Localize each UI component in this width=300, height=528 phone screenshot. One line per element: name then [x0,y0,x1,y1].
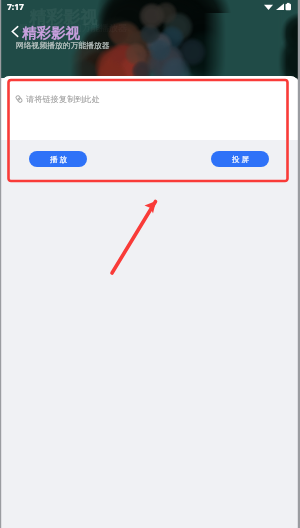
button[interactable]: 投 屏 [211,151,269,167]
button[interactable]: 播 放 [29,151,87,167]
staticText: 精彩影视 [22,24,80,42]
staticText: 投 屏 [232,154,249,164]
staticText: 网络视频播放的万能播放器 [16,40,110,50]
staticText: 精彩影视 [29,7,97,28]
staticText: 播 放 [50,154,67,164]
button[interactable]: Back [7,23,23,40]
staticText: 7:17 [7,1,24,13]
staticText: 网络视频播放的万能播放器 [19,22,127,33]
staticText: 请将链接复制到此处 [26,94,100,104]
